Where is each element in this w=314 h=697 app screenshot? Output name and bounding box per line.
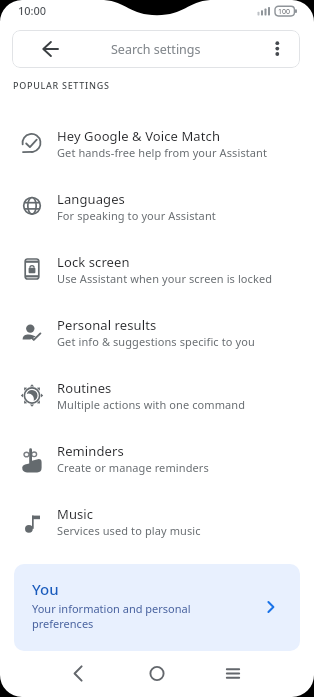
- button[interactable]: Hey Google & Voice Match: [0, 112, 314, 175]
- staticText: Multiple actions with one command: [57, 397, 246, 412]
- staticText: You: [32, 579, 59, 599]
- staticText: POPULAR SETTINGS: [13, 79, 110, 91]
- button[interactable]: Routines: [0, 364, 314, 427]
- button[interactable]: Languages: [0, 175, 314, 238]
- button[interactable]: You: [14, 564, 300, 651]
- staticText: Use Assistant when your screen is locked: [57, 271, 273, 286]
- staticText: Music: [57, 505, 94, 523]
- staticText: Hey Google & Voice Match: [57, 127, 221, 145]
- staticText: Reminders: [57, 442, 124, 460]
- staticText: Your information and personal preference…: [32, 601, 191, 631]
- staticText: Languages: [57, 190, 125, 208]
- button[interactable]: [54, 649, 102, 697]
- staticText: Lock screen: [57, 253, 130, 271]
- button[interactable]: Search settings: [12, 30, 300, 68]
- staticText: Get hands-free help from your Assistant: [57, 145, 268, 160]
- staticText: 10:00: [18, 3, 47, 18]
- button[interactable]: Music: [0, 490, 314, 553]
- staticText: Create or manage reminders: [57, 460, 209, 475]
- staticText: Services used to play music: [57, 523, 201, 538]
- button[interactable]: [209, 649, 257, 697]
- staticText: For speaking to your Assistant: [57, 208, 216, 223]
- button[interactable]: [26, 30, 74, 68]
- staticText: Search settings: [111, 41, 201, 58]
- button[interactable]: [258, 30, 300, 68]
- staticText: 100: [278, 7, 291, 17]
- button[interactable]: Reminders: [0, 427, 314, 490]
- staticText: Personal results: [57, 316, 157, 334]
- staticText: Routines: [57, 379, 112, 397]
- button[interactable]: Lock screen: [0, 238, 314, 301]
- button[interactable]: [133, 649, 181, 697]
- button[interactable]: Personal results: [0, 301, 314, 364]
- staticText: Get info & suggestions specific to you: [57, 334, 255, 349]
